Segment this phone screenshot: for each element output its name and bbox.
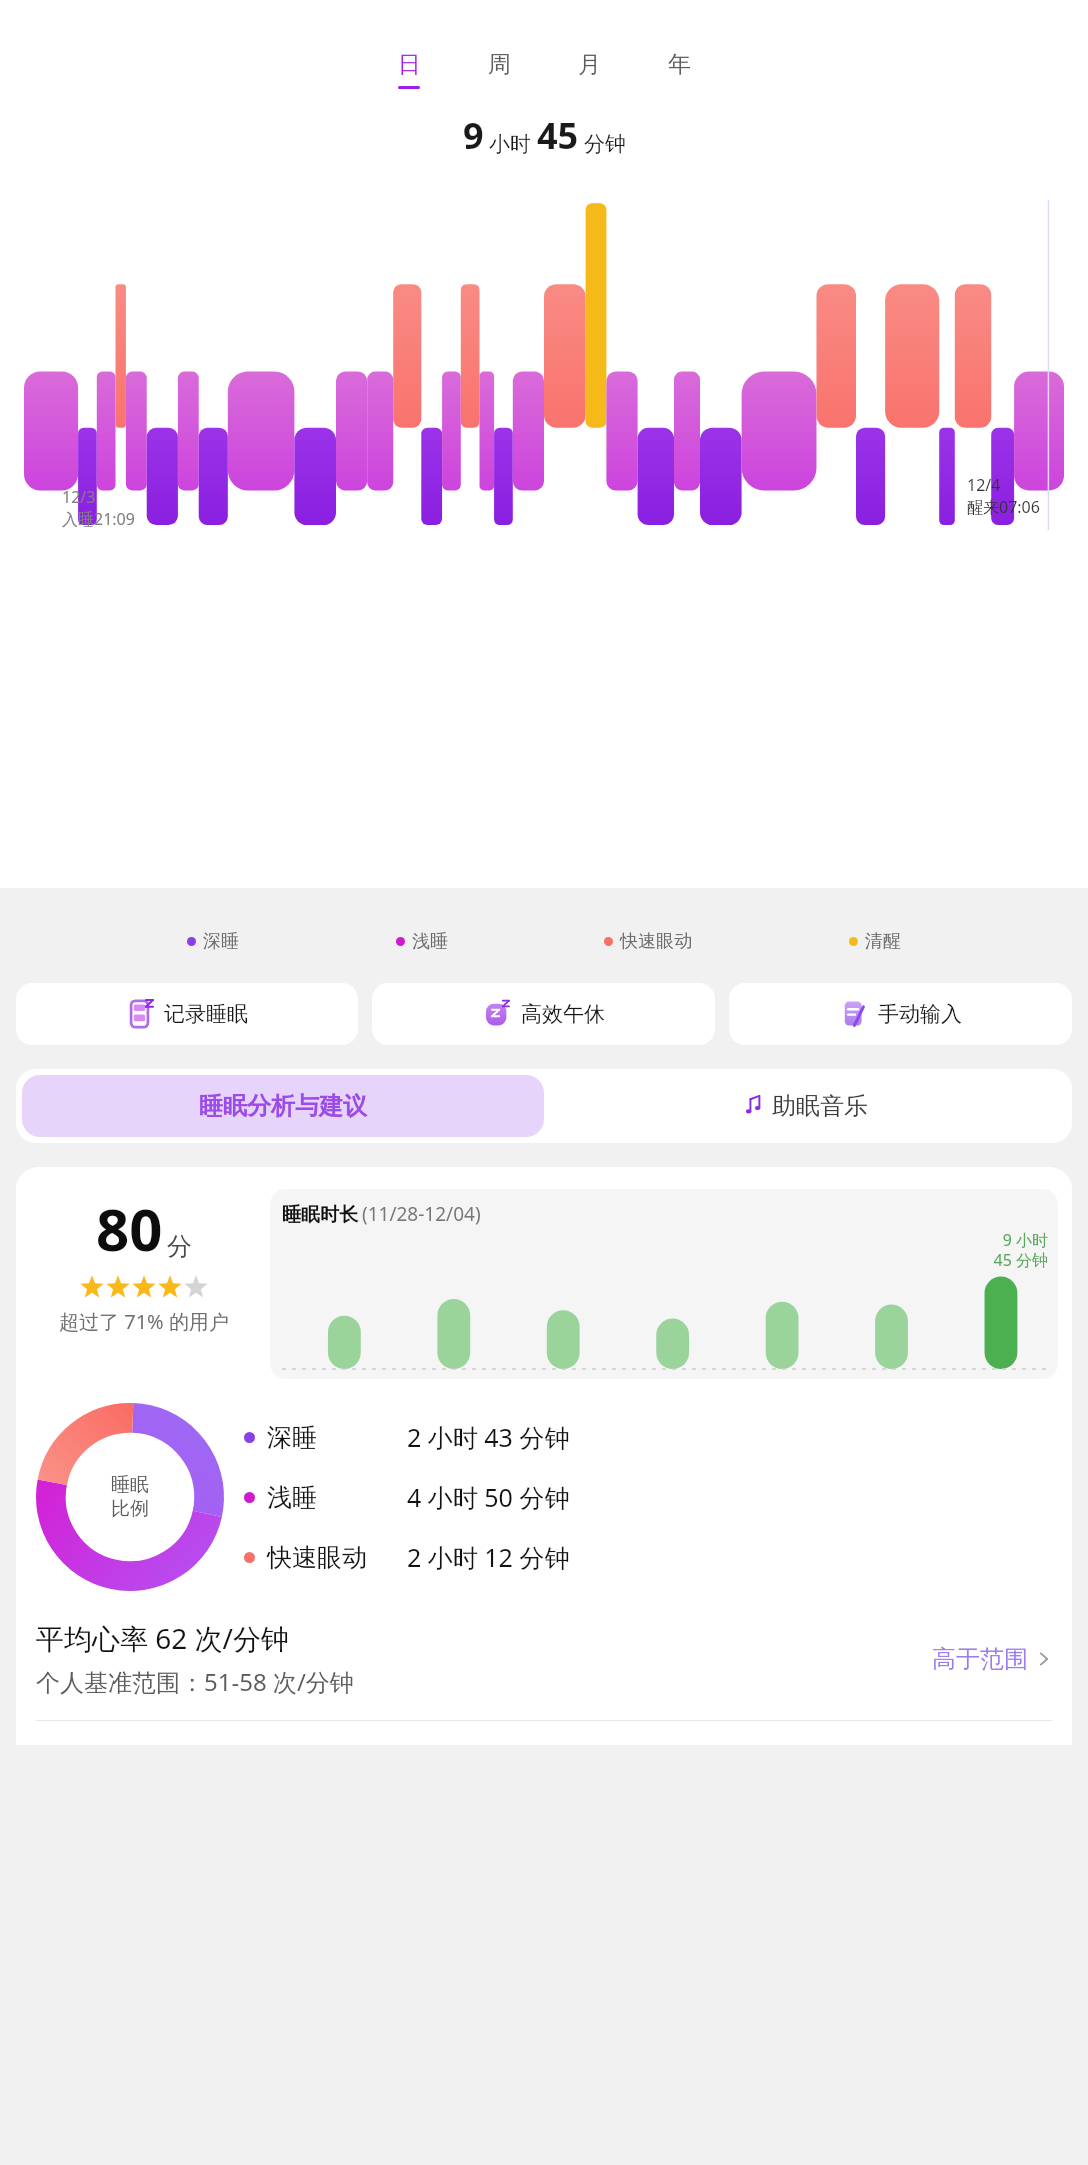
staticText: 超过了 71% 的用户 bbox=[59, 1308, 229, 1335]
staticText: (11/28-12/04) bbox=[362, 1201, 481, 1227]
staticText: 快速眼动 bbox=[620, 930, 692, 953]
staticText: 清醒 bbox=[865, 930, 901, 953]
staticText: 深睡 bbox=[203, 930, 239, 953]
staticText: 45 bbox=[537, 111, 579, 160]
staticText: 平均心率 62 次/分钟 bbox=[36, 1619, 290, 1657]
staticText: 睡眠分析与建议 bbox=[199, 1091, 367, 1121]
staticText: 月 bbox=[578, 50, 601, 79]
staticText: 深睡 bbox=[267, 1422, 407, 1453]
staticText: 分钟 bbox=[584, 131, 626, 157]
staticText: 助眠音乐 bbox=[772, 1091, 868, 1121]
staticText: 2 小时 43 分钟 bbox=[407, 1420, 570, 1454]
button[interactable]: 记录睡眠 bbox=[16, 983, 358, 1045]
button[interactable]: 周 bbox=[476, 50, 522, 89]
staticText: 9 bbox=[463, 111, 484, 160]
staticText: 高效午休 bbox=[521, 1001, 605, 1027]
staticText: 记录睡眠 bbox=[164, 1001, 248, 1027]
staticText: 12/4 bbox=[967, 474, 1001, 496]
staticText: 80 bbox=[96, 1189, 163, 1268]
button[interactable]: 手动输入 bbox=[729, 983, 1072, 1045]
staticText: 分 bbox=[167, 1231, 192, 1262]
staticText: 醒来07:06 bbox=[967, 496, 1040, 518]
staticText: 年 bbox=[668, 50, 691, 79]
staticText: 睡眠时长 bbox=[282, 1203, 358, 1227]
button[interactable]: 年 bbox=[656, 50, 702, 89]
staticText: 日 bbox=[398, 50, 421, 79]
staticText: 周 bbox=[488, 50, 511, 79]
staticText: 浅睡 bbox=[412, 930, 448, 953]
button[interactable]: 高效午休 bbox=[372, 983, 715, 1045]
staticText: 浅睡 bbox=[267, 1482, 407, 1513]
staticText: 高于范围 bbox=[932, 1644, 1028, 1674]
staticText: 4 小时 50 分钟 bbox=[407, 1480, 570, 1514]
staticText: 个人基准范围：51-58 次/分钟 bbox=[36, 1665, 354, 1698]
staticText: 2 小时 12 分钟 bbox=[407, 1540, 570, 1574]
button[interactable]: 日 bbox=[386, 50, 432, 89]
staticText: 快速眼动 bbox=[267, 1542, 407, 1573]
other: 查看详情 bbox=[1034, 1649, 1054, 1669]
staticText: 手动输入 bbox=[878, 1001, 962, 1027]
staticText: 入睡21:09 bbox=[62, 508, 135, 530]
staticText: 小时 bbox=[489, 131, 531, 157]
button[interactable]: 助眠音乐 bbox=[544, 1075, 1066, 1137]
staticText: 12/3 bbox=[62, 486, 96, 508]
button[interactable]: 平均心率 62 次/分钟 bbox=[16, 1619, 1072, 1698]
button[interactable]: 月 bbox=[566, 50, 612, 89]
button[interactable]: 睡眠分析与建议 bbox=[22, 1075, 544, 1137]
staticText: 9 小时 45 分钟 bbox=[993, 1229, 1048, 1271]
staticText: 睡眠 比例 bbox=[111, 1473, 149, 1521]
